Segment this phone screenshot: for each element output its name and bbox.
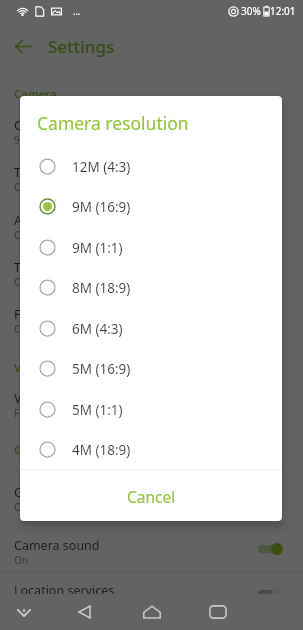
button[interactable]: Recent apps bbox=[201, 595, 235, 629]
button[interactable]: Hide keyboard bbox=[7, 596, 40, 629]
staticText: Auto exposure bbox=[14, 212, 100, 229]
staticText: Off bbox=[14, 275, 29, 289]
staticText: Face detection bbox=[14, 306, 100, 323]
button[interactable]: Location services bbox=[0, 574, 303, 620]
button[interactable]: Grid bbox=[0, 476, 303, 522]
staticText: Off bbox=[14, 322, 29, 336]
staticText: On bbox=[14, 228, 28, 242]
staticText: Touch shot bbox=[14, 259, 79, 276]
staticText: 5M (16:9) bbox=[72, 360, 131, 378]
button[interactable]: 12M (4:3) bbox=[20, 146, 282, 187]
staticText: Timer bbox=[14, 164, 49, 181]
staticText: 9M (16:9) bbox=[72, 198, 131, 216]
button[interactable]: Back bbox=[13, 36, 33, 56]
button[interactable]: Home bbox=[135, 595, 169, 629]
button[interactable]: Auto exposure bbox=[0, 204, 303, 250]
staticText: 8M (18:9) bbox=[72, 279, 131, 297]
staticText: Video resolution bbox=[14, 390, 110, 407]
staticText: Video bbox=[14, 360, 45, 376]
button[interactable]: Camera resolution bbox=[0, 109, 303, 155]
staticText: On bbox=[14, 553, 28, 567]
staticText: Camera resolution bbox=[14, 117, 123, 134]
staticText: Camera resolution bbox=[37, 111, 189, 135]
button[interactable]: 8M (18:9) bbox=[20, 267, 282, 308]
staticText: 12M (4:3) bbox=[72, 158, 131, 176]
button[interactable]: Camera sound bbox=[0, 529, 303, 575]
staticText: Off bbox=[14, 598, 29, 612]
staticText: ... bbox=[73, 5, 81, 17]
button[interactable]: 9M (16:9) bbox=[20, 186, 282, 227]
staticText: 6M (4:3) bbox=[72, 320, 123, 338]
staticText: FHD (16:9) bbox=[14, 406, 63, 420]
button[interactable]: Back bbox=[68, 595, 101, 628]
staticText: Settings bbox=[48, 35, 115, 58]
staticText: 30% bbox=[241, 4, 261, 18]
staticText: Off bbox=[14, 500, 29, 514]
button[interactable]: Touch shot bbox=[0, 251, 303, 297]
button[interactable]: 4M (18:9) bbox=[20, 429, 282, 470]
staticText: 9M (16:9) bbox=[14, 133, 58, 147]
staticText: Off bbox=[14, 180, 29, 194]
button[interactable]: 9M (1:1) bbox=[20, 227, 282, 268]
staticText: Location services bbox=[14, 582, 115, 599]
button[interactable]: Face detection bbox=[0, 298, 303, 344]
staticText: Grid bbox=[14, 484, 40, 501]
button[interactable]: Video resolution bbox=[0, 382, 303, 428]
staticText: 4M (18:9) bbox=[72, 441, 131, 459]
staticText: 12:01 bbox=[270, 4, 296, 18]
staticText: 9M (1:1) bbox=[72, 239, 123, 257]
button[interactable]: Timer bbox=[0, 156, 303, 202]
button[interactable]: 6M (4:3) bbox=[20, 308, 282, 349]
staticText: Camera sound bbox=[14, 537, 100, 554]
button[interactable]: 5M (16:9) bbox=[20, 348, 282, 389]
button[interactable]: Cancel bbox=[20, 471, 282, 521]
staticText: Cancel bbox=[127, 486, 176, 507]
staticText: General bbox=[14, 442, 58, 458]
button[interactable]: 5M (1:1) bbox=[20, 389, 282, 430]
staticText: Camera bbox=[14, 86, 57, 102]
staticText: 5M (1:1) bbox=[72, 401, 123, 419]
